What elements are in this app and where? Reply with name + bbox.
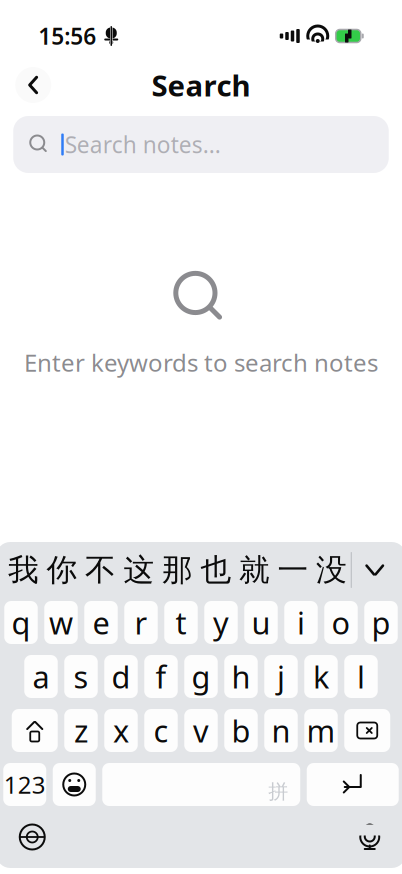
button[interactable]: d: [104, 655, 138, 698]
staticText: i: [297, 602, 305, 643]
staticText: t: [175, 602, 186, 643]
staticText: h: [231, 656, 250, 697]
staticText: 不: [85, 551, 116, 589]
button[interactable]: f: [144, 655, 178, 698]
staticText: e: [92, 602, 109, 643]
button[interactable]: Shift: [12, 709, 58, 752]
button[interactable]: 就: [235, 544, 274, 596]
staticText: 一: [277, 551, 308, 589]
button[interactable]: o: [324, 601, 358, 644]
staticText: l: [357, 656, 365, 697]
button[interactable]: 那: [158, 544, 197, 596]
staticText: m: [306, 710, 335, 751]
button[interactable]: t: [164, 601, 198, 644]
button[interactable]: u: [244, 601, 278, 644]
button[interactable]: n: [264, 709, 298, 752]
button[interactable]: More candidates: [352, 544, 398, 596]
staticText: 没: [316, 551, 347, 589]
staticText: c: [153, 710, 168, 751]
staticText: 123: [4, 769, 46, 800]
button[interactable]: y: [204, 601, 238, 644]
staticText: d: [111, 656, 130, 697]
staticText: 就: [239, 551, 270, 589]
button[interactable]: Back: [11, 63, 55, 107]
staticText: q: [11, 602, 30, 643]
button[interactable]: w: [44, 601, 78, 644]
button[interactable]: j: [264, 655, 298, 698]
button[interactable]: Delete: [344, 709, 390, 752]
staticText: 这: [123, 551, 154, 589]
button[interactable]: z: [64, 709, 98, 752]
staticText: k: [313, 656, 329, 697]
button[interactable]: 你: [43, 544, 81, 596]
button[interactable]: 一: [274, 544, 312, 596]
button[interactable]: Return: [307, 763, 399, 806]
button[interactable]: 我: [4, 544, 43, 596]
staticText: p: [371, 602, 390, 643]
staticText: z: [74, 710, 88, 751]
button[interactable]: p: [364, 601, 398, 644]
button[interactable]: g: [184, 655, 218, 698]
button[interactable]: q: [4, 601, 38, 644]
button[interactable]: x: [104, 709, 138, 752]
button[interactable]: b: [224, 709, 258, 752]
staticText: w: [49, 602, 73, 643]
staticText: 我: [8, 551, 39, 589]
staticText: 你: [46, 551, 77, 589]
staticText: a: [32, 656, 49, 697]
staticText: r: [134, 602, 147, 643]
staticText: o: [331, 602, 350, 643]
staticText: 拼: [268, 779, 288, 804]
staticText: x: [113, 710, 129, 751]
staticText: Search: [151, 65, 250, 104]
button[interactable]: 没: [312, 544, 351, 596]
staticText: g: [191, 656, 210, 697]
button[interactable]: 123: [3, 763, 46, 806]
button[interactable]: 不: [81, 544, 120, 596]
staticText: y: [213, 602, 229, 643]
button[interactable]: c: [144, 709, 178, 752]
button[interactable]: l: [344, 655, 378, 698]
button[interactable]: Space: [102, 763, 300, 806]
button[interactable]: 也: [197, 544, 235, 596]
button[interactable]: r: [124, 601, 158, 644]
staticText: v: [193, 710, 209, 751]
button[interactable]: Emoji: [53, 763, 96, 806]
button[interactable]: e: [84, 601, 118, 644]
button[interactable]: h: [224, 655, 258, 698]
button[interactable]: Switch keyboard: [10, 815, 54, 859]
staticText: u: [251, 602, 270, 643]
staticText: Search notes...: [65, 129, 221, 159]
button[interactable]: s: [64, 655, 98, 698]
button[interactable]: a: [24, 655, 58, 698]
button[interactable]: Dictation: [348, 815, 392, 859]
staticText: Enter keywords to search notes: [24, 347, 378, 378]
button[interactable]: v: [184, 709, 218, 752]
staticText: n: [271, 710, 290, 751]
button[interactable]: m: [304, 709, 338, 752]
staticText: 15:56: [38, 21, 96, 51]
button[interactable]: k: [304, 655, 338, 698]
button[interactable]: 这: [120, 544, 158, 596]
button[interactable]: i: [284, 601, 318, 644]
staticText: f: [155, 656, 166, 697]
staticText: j: [277, 656, 285, 697]
staticText: 那: [162, 551, 193, 589]
staticText: 也: [200, 551, 231, 589]
staticText: b: [231, 710, 250, 751]
staticText: s: [73, 656, 88, 697]
button[interactable]: Search notes...: [0, 116, 402, 173]
